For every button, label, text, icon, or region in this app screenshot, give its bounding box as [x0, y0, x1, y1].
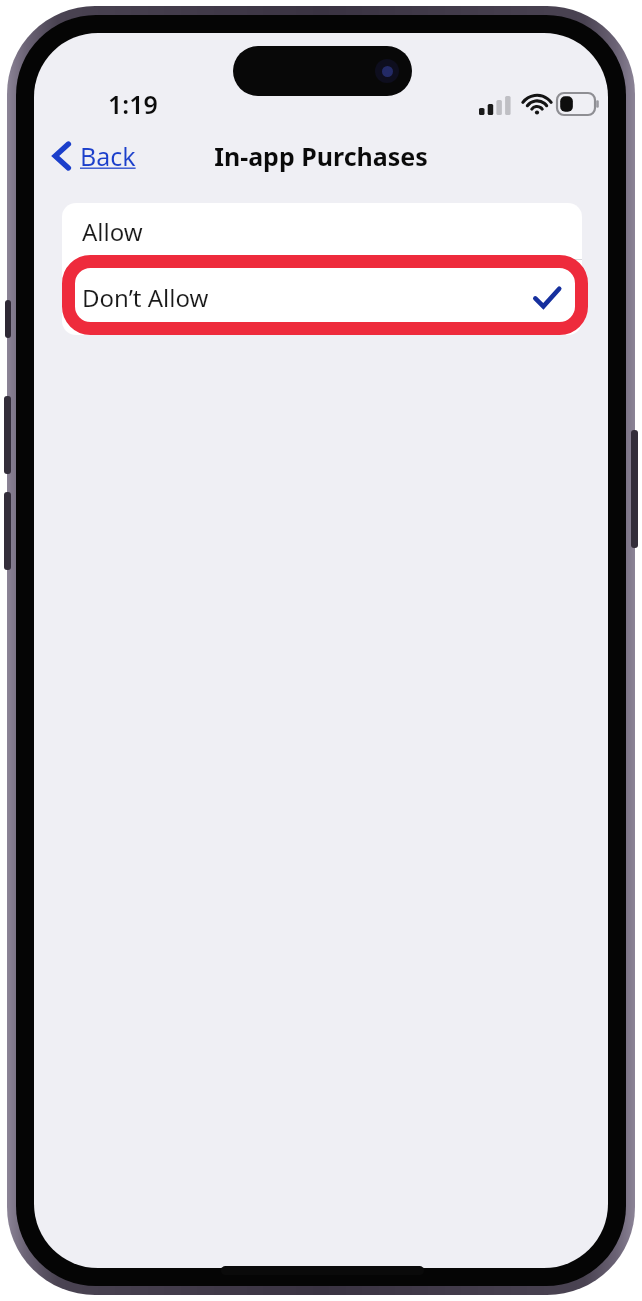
- staticText: 1:19: [108, 87, 158, 121]
- button[interactable]: Back: [46, 128, 148, 184]
- staticText: In-app Purchases: [214, 139, 428, 173]
- staticText: Back: [80, 139, 136, 173]
- staticText: Allow: [82, 215, 143, 248]
- button[interactable]: Allow: [62, 203, 582, 259]
- staticText: Don’t Allow: [82, 281, 209, 314]
- button[interactable]: Don’t Allow: [62, 260, 582, 335]
